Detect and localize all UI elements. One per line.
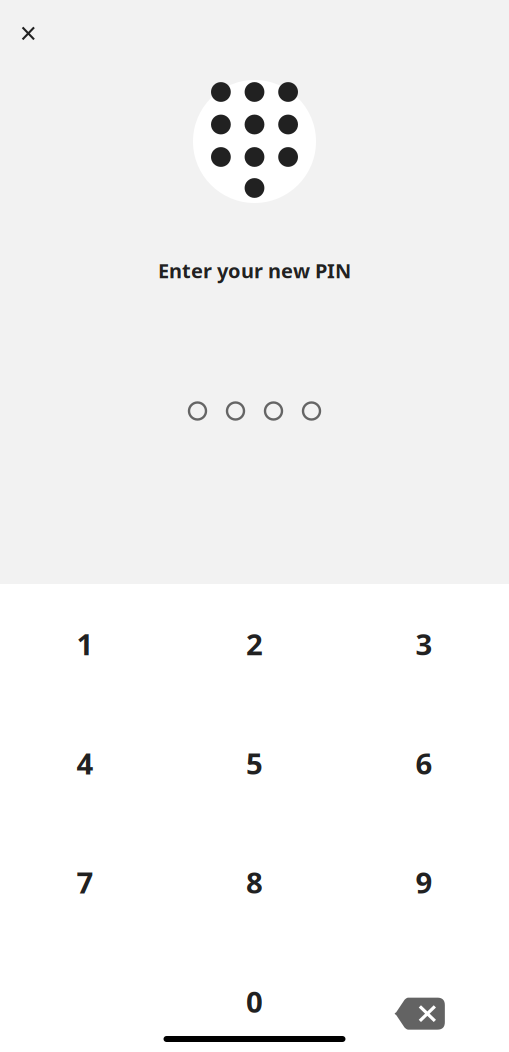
staticText: 3	[416, 624, 433, 663]
button[interactable]: 4	[0, 703, 170, 823]
button[interactable]: 1	[0, 584, 170, 703]
staticText: 8	[246, 863, 263, 902]
staticText: 0	[246, 982, 263, 1021]
staticText: 1	[76, 624, 93, 663]
staticText: 6	[416, 743, 433, 782]
button[interactable]: 3	[339, 584, 509, 703]
button[interactable]: Close	[6, 11, 50, 55]
button[interactable]: 8	[170, 823, 339, 942]
button[interactable]: Delete	[339, 942, 509, 1052]
staticText: 7	[76, 863, 93, 902]
staticText: 9	[416, 863, 433, 902]
button[interactable]: 7	[0, 823, 170, 942]
button[interactable]: 0	[170, 942, 339, 1052]
staticText: Enter your new PIN	[158, 257, 351, 284]
staticText: 5	[246, 743, 263, 782]
button[interactable]: 5	[170, 703, 339, 823]
button[interactable]: 9	[339, 823, 509, 942]
button[interactable]: 6	[339, 703, 509, 823]
button[interactable]: 2	[170, 584, 339, 703]
staticText: 2	[246, 624, 263, 663]
staticText: 4	[76, 743, 93, 782]
